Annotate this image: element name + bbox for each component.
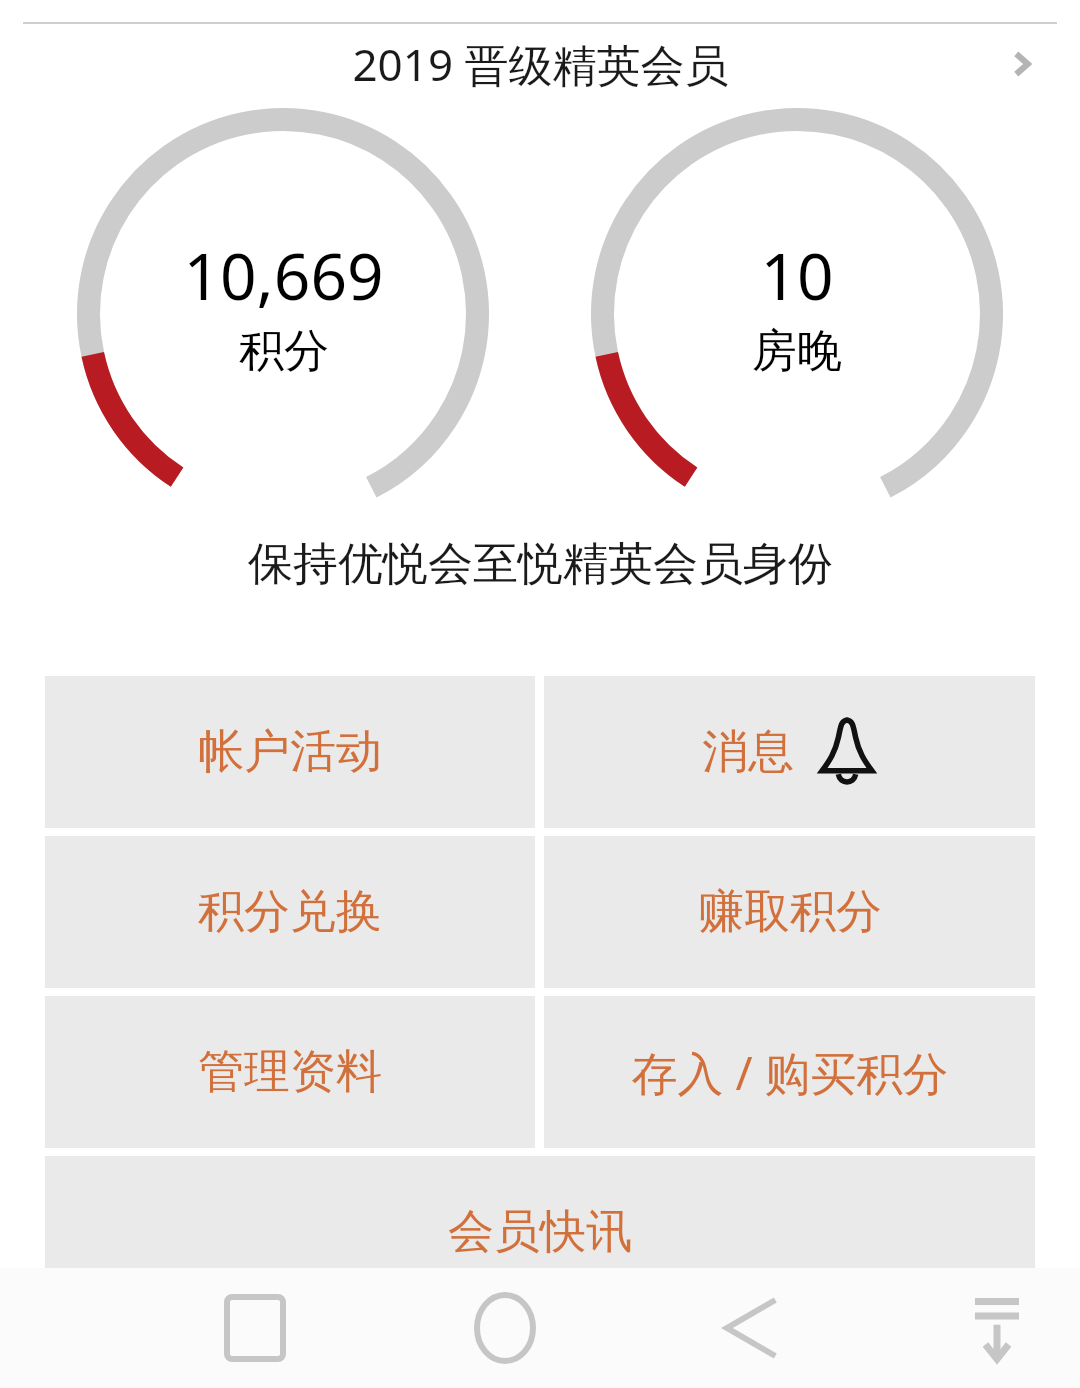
button[interactable]: 赚取积分 — [544, 836, 1035, 988]
staticText: 赚取积分 — [698, 883, 882, 941]
staticText: 10 — [760, 232, 834, 319]
button[interactable]: 管理资料 — [45, 996, 535, 1148]
staticText: 帐户活动 — [198, 723, 382, 781]
button[interactable]: 会员快讯 — [45, 1156, 1035, 1308]
button[interactable]: 存入 / 购买积分 — [544, 996, 1035, 1148]
button[interactable]: Back — [686, 1268, 816, 1388]
staticText: 管理资料 — [198, 1043, 382, 1101]
staticText: 存入 / 购买积分 — [631, 1041, 949, 1104]
button[interactable]: 积分兑换 — [45, 836, 535, 988]
button[interactable]: 消息 — [544, 676, 1035, 828]
button[interactable]: Details — [1004, 46, 1040, 82]
button[interactable]: Recents — [190, 1268, 320, 1388]
staticText: 会员快讯 — [448, 1203, 632, 1261]
staticText: 房晚 — [752, 323, 842, 380]
button[interactable]: Hide keyboard — [932, 1268, 1062, 1388]
staticText: 消息 — [702, 723, 794, 781]
button[interactable]: 2019 晋级精英会员 — [0, 24, 1080, 104]
staticText: 积分 — [239, 323, 329, 380]
staticText: 2019 晋级精英会员 — [352, 34, 729, 94]
staticText: 保持优悦会至悦精英会员身份 — [248, 536, 833, 593]
button[interactable]: Home — [440, 1268, 570, 1388]
staticText: 10,669 — [183, 232, 384, 319]
button[interactable]: 帐户活动 — [45, 676, 535, 828]
staticText: 积分兑换 — [198, 883, 382, 941]
